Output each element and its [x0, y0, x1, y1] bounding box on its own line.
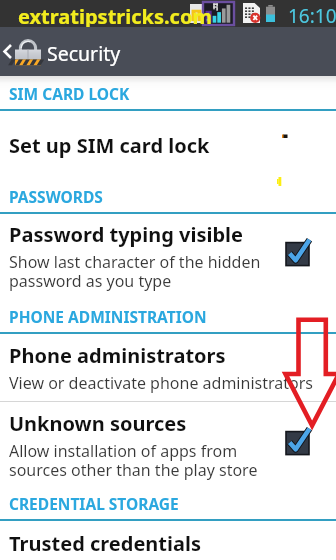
- button[interactable]: Toggle checkbox: [279, 426, 309, 458]
- staticText: Security: [47, 40, 121, 67]
- staticText: PASSWORDS: [9, 186, 103, 207]
- staticText: Phone administrators: [9, 342, 226, 369]
- staticText: Password typing visible: [9, 221, 243, 248]
- button[interactable]: Navigate up: [0, 27, 336, 76]
- staticText: SIM CARD LOCK: [9, 83, 130, 104]
- staticText: PHONE ADMINISTRATION: [9, 306, 207, 327]
- staticText: extratipstricks.com: [18, 3, 212, 30]
- button[interactable]: Set up SIM card lock: [0, 132, 336, 159]
- staticText: Show last character of the hidden passwo…: [9, 253, 261, 291]
- button[interactable]: Trusted credentials: [0, 530, 336, 557]
- staticText: Allow installation of apps from sources …: [9, 442, 258, 480]
- button[interactable]: Phone administrators: [0, 342, 336, 393]
- staticText: Set up SIM card lock: [9, 132, 210, 159]
- button[interactable]: Unknown sources: [0, 410, 336, 480]
- staticText: CREDENTIAL STORAGE: [9, 493, 179, 514]
- button[interactable]: Password typing visible: [0, 221, 336, 291]
- staticText: Unknown sources: [9, 410, 187, 437]
- button[interactable]: Toggle checkbox: [279, 237, 309, 269]
- staticText: 16:10: [288, 3, 336, 29]
- staticText: View or deactivate phone administrators: [9, 374, 313, 393]
- staticText: Trusted credentials: [9, 530, 201, 557]
